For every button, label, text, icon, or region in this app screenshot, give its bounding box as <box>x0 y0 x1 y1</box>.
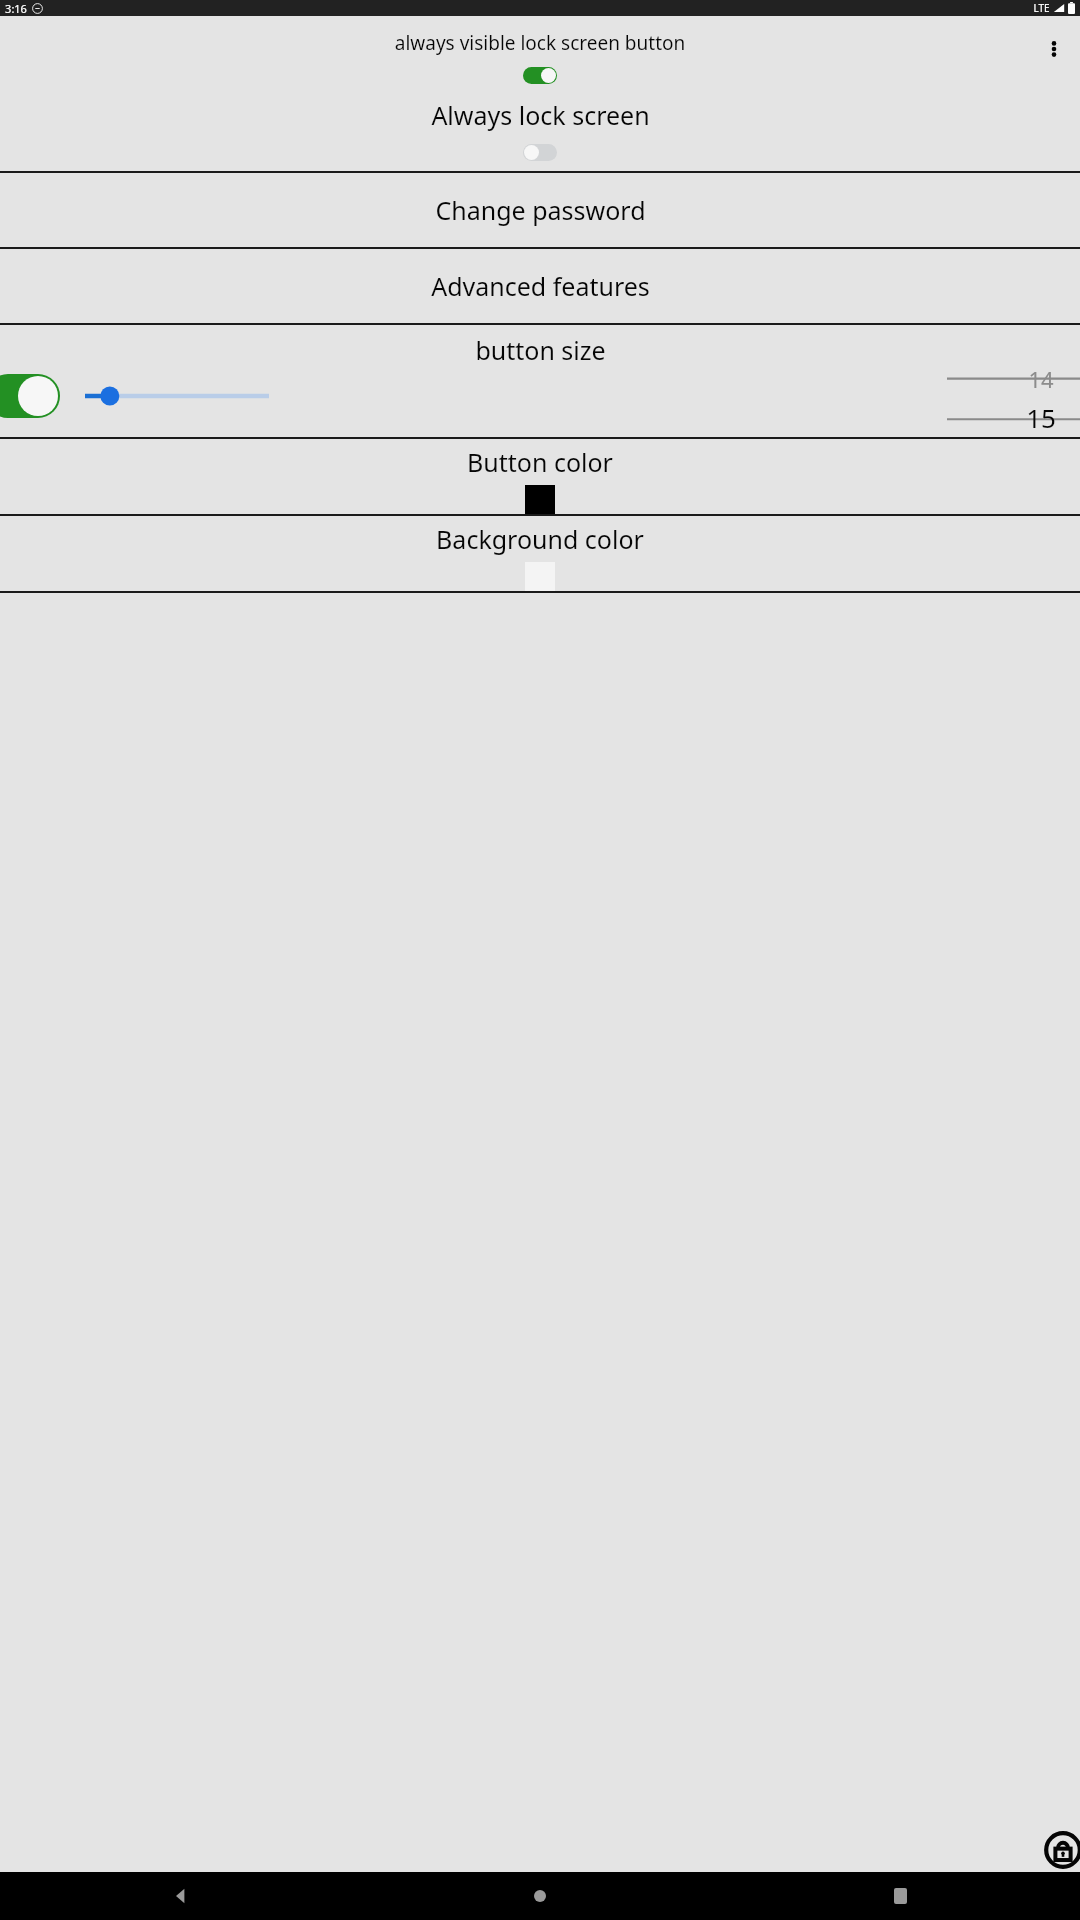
staticText: 15 <box>1026 400 1056 429</box>
button[interactable]: Size number picker <box>1002 366 1080 429</box>
button[interactable]: More options <box>1036 31 1072 67</box>
staticText: always visible lock screen button <box>40 30 1040 56</box>
staticText: Advanced features <box>431 269 650 303</box>
button[interactable]: Home <box>360 1872 720 1920</box>
staticText: Change password <box>435 193 646 227</box>
button[interactable]: Lock screen <box>1044 1831 1080 1869</box>
button[interactable]: Background color <box>0 516 1080 591</box>
staticText: button size <box>475 333 606 367</box>
button[interactable]: Change password <box>0 173 1080 247</box>
button[interactable]: Lock button preview toggle <box>0 374 60 418</box>
staticText: 3:16 <box>5 1 27 16</box>
staticText: LTE <box>1033 1 1050 15</box>
button[interactable]: Back <box>0 1872 360 1920</box>
button[interactable]: Advanced features <box>0 249 1080 323</box>
button[interactable]: Recent apps <box>720 1872 1080 1920</box>
staticText: Button color <box>467 445 613 479</box>
staticText: 14 <box>1028 364 1054 394</box>
staticText: Background color <box>436 522 644 556</box>
button[interactable]: Always visible lock screen button toggle <box>523 67 557 84</box>
button[interactable]: Always lock screen toggle <box>523 144 557 161</box>
button[interactable]: Button color <box>0 439 1080 514</box>
button[interactable]: Button size slider <box>82 374 272 418</box>
staticText: Always lock screen <box>431 98 650 132</box>
